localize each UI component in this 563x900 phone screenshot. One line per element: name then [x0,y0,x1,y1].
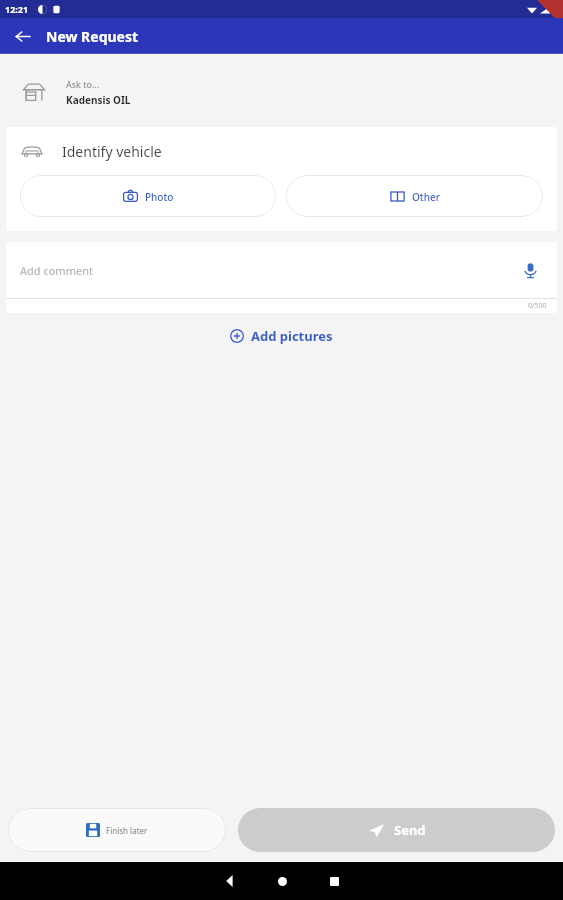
staticText: Photo [145,190,174,204]
button[interactable]: Finish later [8,808,226,852]
button[interactable]: Send [238,808,555,852]
button[interactable]: Ask to... [6,63,557,121]
staticText: Add pictures [251,327,333,345]
button[interactable]: Add comment [6,242,557,298]
button[interactable]: Other [286,175,543,217]
staticText: 12:21 [5,3,29,15]
button[interactable]: Recents [308,862,360,900]
button[interactable]: Home [256,862,308,900]
staticText: Finish later [106,825,148,836]
button[interactable]: Add pictures [222,322,341,350]
staticText: Send [394,821,426,839]
button[interactable]: Voice input [517,257,543,283]
button[interactable]: Photo [20,175,276,217]
staticText: Add comment [20,263,93,278]
staticText: Other [412,190,440,204]
button[interactable]: Back [204,862,256,900]
staticText: Identify vehicle [62,142,162,161]
staticText: New Request [46,27,139,46]
button[interactable]: Identify vehicle [6,127,557,175]
staticText: Kadensis OIL [66,93,131,107]
button[interactable]: Back [6,20,38,52]
staticText: Ask to... [66,78,100,90]
staticText: 0/500 [528,301,547,311]
